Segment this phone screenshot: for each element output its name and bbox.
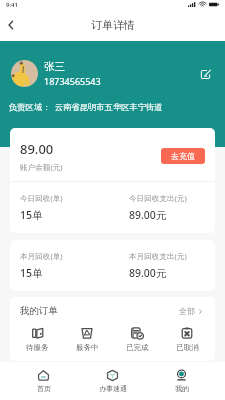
staticText: 办事速通 [99, 384, 127, 393]
staticText: 负责区域： 云南省昆明市五华区丰宁街道 [9, 101, 163, 112]
staticText: 本月回收支出(元) [129, 251, 187, 261]
staticText: 9:41 [6, 1, 18, 9]
button[interactable]: Edit profile [195, 64, 215, 84]
staticText: 18734565543 [44, 75, 101, 87]
button[interactable]: 服务中 [62, 326, 112, 352]
staticText: 15单 [20, 266, 43, 280]
staticText: 89.00元 [129, 266, 167, 280]
staticText: 已取消 [176, 343, 199, 352]
staticText: 我的订单 [20, 305, 58, 317]
staticText: 账户余额(元) [20, 162, 63, 172]
staticText: 89.00元 [129, 208, 167, 222]
button[interactable]: 全部 [179, 306, 203, 316]
staticText: 本月回收(单) [20, 251, 63, 261]
button[interactable]: 去充值 [161, 148, 205, 164]
staticText: 订单详情 [91, 18, 135, 32]
staticText: 我的 [175, 384, 189, 393]
staticText: 89.00 [20, 140, 54, 158]
staticText: 全部 [179, 306, 195, 316]
staticText: 张三 [44, 60, 65, 73]
button[interactable]: 待服务 [13, 326, 62, 352]
staticText: 已完成 [126, 343, 149, 352]
staticText: 待服务 [26, 343, 49, 352]
staticText: 15单 [20, 208, 43, 222]
button[interactable]: Back [0, 9, 22, 41]
staticText: 今日回收(单) [20, 193, 63, 203]
button[interactable]: 我的 [147, 362, 216, 400]
button[interactable]: 办事速通 [78, 362, 147, 400]
button[interactable]: 已取消 [162, 326, 212, 352]
button[interactable]: 已完成 [112, 326, 162, 352]
staticText: 去充值 [171, 151, 195, 161]
staticText: 服务中 [76, 343, 99, 352]
staticText: 今日回收支出(元) [129, 193, 187, 203]
staticText: 首页 [37, 384, 51, 393]
button[interactable]: 首页 [9, 362, 78, 400]
